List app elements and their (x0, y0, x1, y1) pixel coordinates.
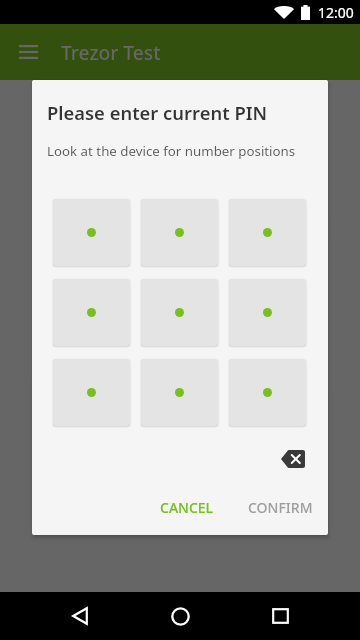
button[interactable]: PIN position 4 (53, 279, 130, 346)
button[interactable]: CONFIRM (240, 492, 321, 523)
staticText: 12:00 (318, 3, 354, 22)
staticText: CANCEL (160, 498, 214, 517)
button[interactable]: Backspace (275, 446, 311, 472)
button[interactable]: Home (156, 592, 204, 640)
button[interactable]: PIN position 2 (141, 199, 218, 266)
button[interactable]: CANCEL (152, 492, 222, 523)
button[interactable]: PIN position 3 (229, 199, 306, 266)
button[interactable]: PIN position 1 (53, 199, 130, 266)
button[interactable]: Back (56, 592, 104, 640)
staticText: Please enter current PIN (47, 100, 268, 125)
button[interactable]: PIN position 7 (53, 359, 130, 426)
button[interactable]: Recent apps (256, 592, 304, 640)
staticText: Trezor Test (61, 39, 161, 65)
staticText: Look at the device for number positions (47, 142, 296, 160)
button[interactable]: PIN position 9 (229, 359, 306, 426)
staticText: CONFIRM (248, 498, 313, 517)
button[interactable]: Open navigation drawer (0, 24, 56, 80)
button[interactable]: PIN position 5 (141, 279, 218, 346)
button[interactable]: PIN position 6 (229, 279, 306, 346)
button[interactable]: PIN position 8 (141, 359, 218, 426)
